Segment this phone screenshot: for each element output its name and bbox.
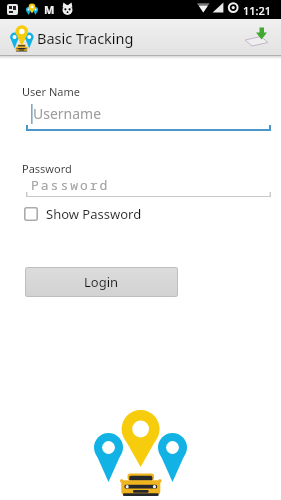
button[interactable]: Login xyxy=(25,267,178,297)
staticText: Show Password xyxy=(46,205,142,223)
staticText: User Name xyxy=(22,84,80,99)
staticText: Password xyxy=(31,176,110,194)
staticText: 11:21 xyxy=(243,3,272,18)
button[interactable]: Show Password xyxy=(24,205,142,223)
button[interactable]: Basic Tracking xyxy=(37,28,134,48)
button[interactable]: Username xyxy=(26,100,271,131)
staticText: Login xyxy=(84,273,119,291)
button[interactable]: Password xyxy=(26,175,271,197)
staticText: Username xyxy=(33,104,102,123)
staticText: M xyxy=(44,2,55,17)
staticText: Password xyxy=(22,161,72,176)
